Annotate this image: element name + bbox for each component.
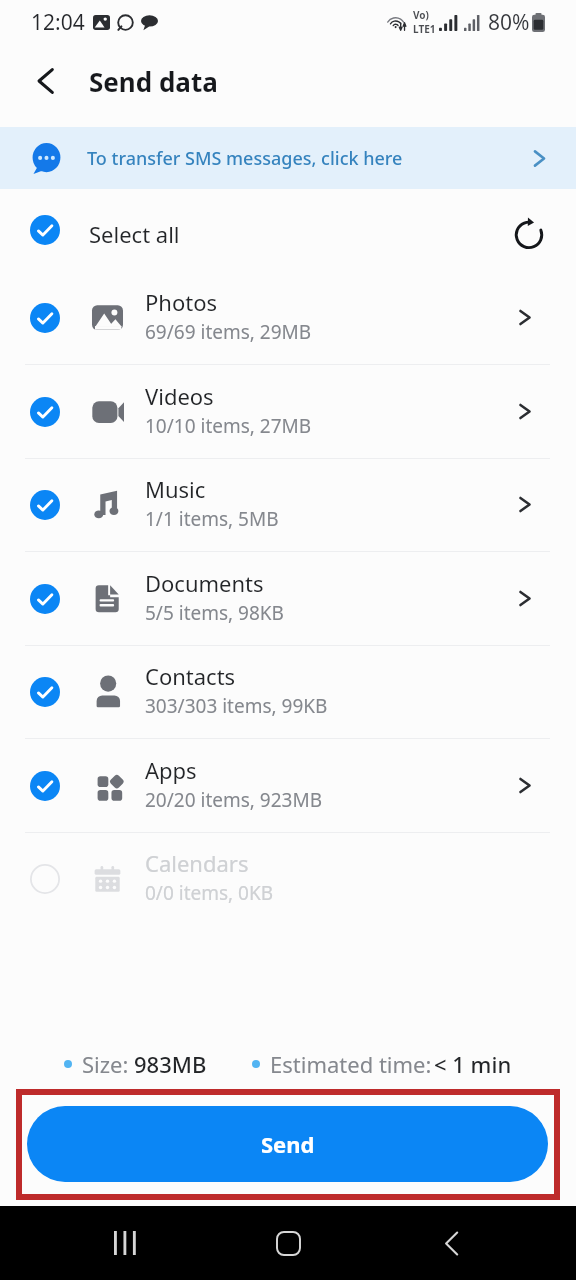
staticText: Music [145,474,206,504]
button[interactable]: Documents [0,552,576,646]
button[interactable]: Videos [0,365,576,459]
staticText: 1/1 items, 5MB [145,506,279,532]
staticText: Apps [145,755,197,785]
staticText: Calendars [145,848,249,878]
button[interactable]: Music [0,458,576,552]
staticText: LTE1 [413,22,436,36]
staticText: 10/10 items, 27MB [145,413,312,439]
button[interactable]: Select all [0,188,576,272]
staticText: Estimated time: [270,1049,432,1079]
staticText: 0/0 items, 0KB [145,880,274,906]
staticText: 80% [488,8,530,37]
button[interactable]: To transfer SMS messages, click here [0,127,576,189]
button[interactable]: Recent apps [97,1215,153,1271]
staticText: Contacts [145,661,236,691]
button[interactable]: Refresh [509,213,549,253]
button[interactable]: Photos [0,271,576,365]
staticText: 983MB [134,1049,207,1079]
staticText: Size: [82,1049,129,1079]
staticText: Videos [145,381,214,411]
button[interactable]: Contacts [0,645,576,739]
button[interactable]: Navigate up [20,56,70,106]
staticText: To transfer SMS messages, click here [87,146,403,171]
staticText: Send [261,1129,315,1159]
button[interactable]: Apps [0,739,576,833]
staticText: < 1 min [434,1049,512,1079]
staticText: 69/69 items, 29MB [145,319,312,345]
staticText: Photos [145,287,218,317]
staticText: 5/5 items, 98KB [145,600,284,626]
button[interactable]: Back [423,1215,479,1271]
staticText: Documents [145,568,264,598]
staticText: 303/303 items, 99KB [145,693,328,719]
staticText: 12:04 [31,8,85,37]
button[interactable]: Calendars [0,832,576,926]
button[interactable]: Home [260,1215,316,1271]
staticText: Vo) [413,8,429,22]
button[interactable]: Send [27,1106,548,1182]
staticText: Send data [89,64,218,99]
staticText: 20/20 items, 923MB [145,787,323,813]
staticText: Select all [89,219,180,249]
